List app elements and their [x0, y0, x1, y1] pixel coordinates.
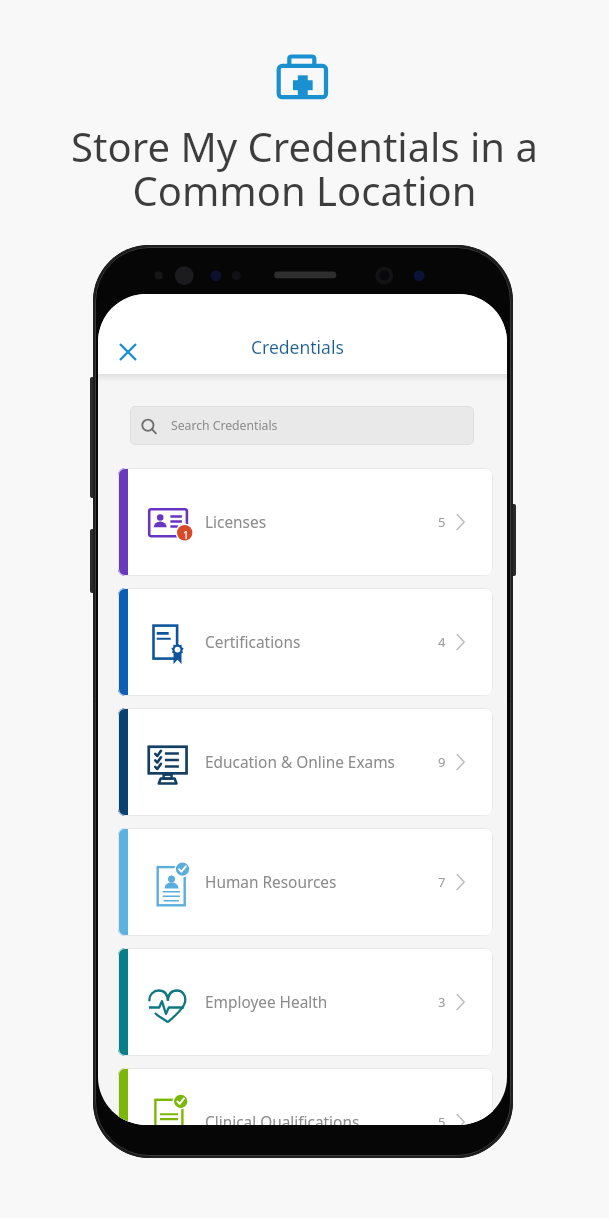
button[interactable]: Clinical Qualifications	[118, 1068, 493, 1125]
staticText: 4	[438, 633, 446, 651]
staticText: Store My Credentials in a Common Locatio…	[0, 119, 609, 217]
staticText: Education & Online Exams	[205, 752, 395, 773]
staticText: 5	[438, 1113, 446, 1125]
staticText: 1	[183, 528, 189, 542]
button[interactable]: Human Resources	[118, 828, 493, 936]
staticText: Credentials	[251, 335, 344, 359]
staticText: Licenses	[205, 512, 267, 533]
staticText: 7	[438, 873, 446, 891]
staticText: Search Credentials	[171, 417, 278, 434]
staticText: 3	[438, 993, 446, 1011]
button[interactable]: Employee Health	[118, 948, 493, 1056]
button[interactable]: 1	[118, 468, 493, 576]
button[interactable]: Close	[109, 333, 147, 371]
button[interactable]: Search Credentials	[130, 406, 474, 445]
staticText: Employee Health	[205, 992, 328, 1013]
staticText: Certifications	[205, 632, 301, 653]
staticText: 9	[438, 753, 446, 771]
staticText: Human Resources	[205, 872, 337, 893]
button[interactable]: Certifications	[118, 588, 493, 696]
staticText: Clinical Qualifications	[205, 1112, 360, 1125]
button[interactable]: Education & Online Exams	[118, 708, 493, 816]
staticText: 5	[438, 513, 446, 531]
